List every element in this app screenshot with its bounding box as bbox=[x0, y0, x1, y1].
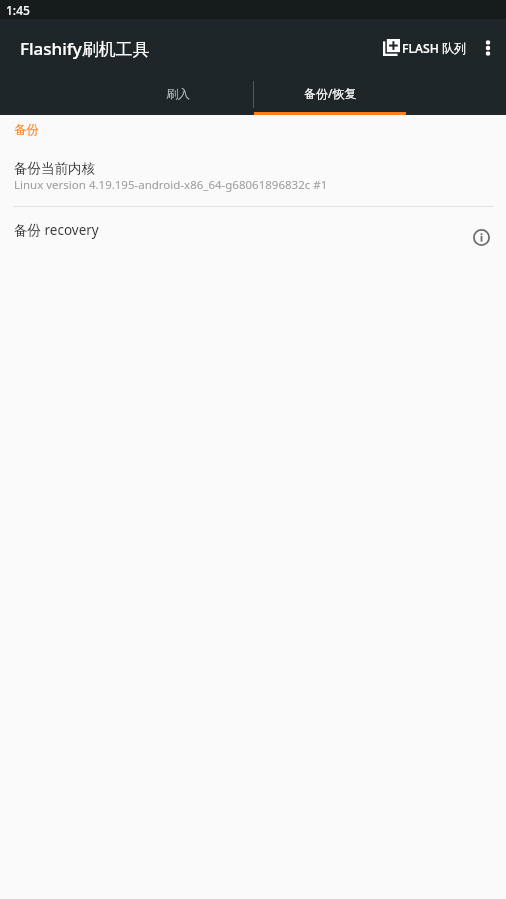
button[interactable]: 备份 recovery bbox=[0, 207, 506, 261]
staticText: Linux version 4.19.195-android-x86_64-g6… bbox=[14, 177, 328, 193]
staticText: 备份 recovery bbox=[14, 221, 99, 239]
button[interactable]: 备份/恢复 bbox=[254, 77, 406, 115]
button[interactable]: 刷入 bbox=[102, 77, 254, 115]
staticText: 刷入 bbox=[166, 86, 190, 101]
staticText: FLASH 队列 bbox=[402, 40, 467, 57]
button[interactable]: Info bbox=[465, 221, 497, 253]
staticText: 备份 bbox=[14, 122, 39, 138]
staticText: 备份/恢复 bbox=[304, 85, 357, 101]
staticText: 备份当前内核 bbox=[14, 160, 95, 177]
button[interactable]: FLASH 队列 bbox=[380, 26, 471, 70]
button[interactable]: More options bbox=[471, 26, 504, 70]
staticText: Flashify刷机工具 bbox=[20, 37, 150, 60]
button[interactable]: 备份当前内核 bbox=[0, 145, 506, 206]
staticText: 1:45 bbox=[6, 2, 30, 18]
